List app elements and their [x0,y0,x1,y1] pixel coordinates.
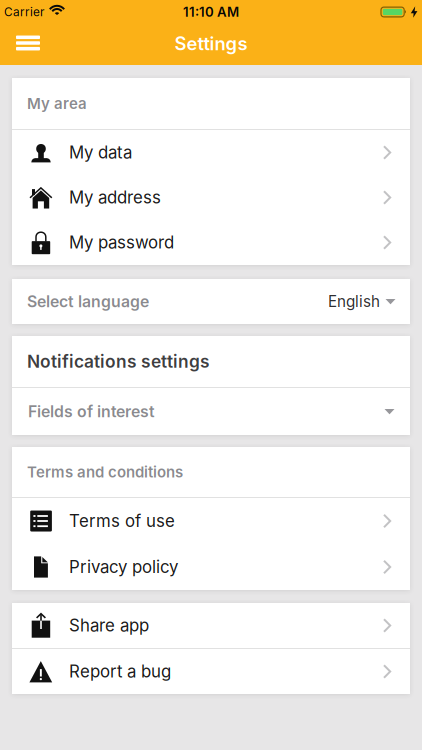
staticText: My area [27,94,87,112]
button[interactable]: My password [12,220,410,265]
staticText: Report a bug [69,661,171,682]
staticText: English [328,292,380,311]
button[interactable]: Report a bug [12,649,410,694]
staticText: My address [69,187,161,208]
staticText: My password [69,232,174,253]
button[interactable]: Terms of use [12,498,410,544]
button[interactable]: Privacy policy [12,544,410,590]
staticText: Share app [69,615,149,636]
staticText: Terms and conditions [27,463,183,481]
staticText: Settings [174,32,247,55]
button[interactable]: Fields of interest [12,388,410,435]
button[interactable]: My address [12,175,410,220]
staticText: Notifications settings [27,351,210,372]
staticText: Privacy policy [69,557,178,577]
staticText: My data [69,142,132,163]
staticText: Select language [27,292,149,311]
button[interactable]: Share app [12,603,410,648]
staticText: 11:10 AM [183,4,239,20]
staticText: Terms of use [69,511,175,531]
staticText: Fields of interest [28,402,155,421]
button[interactable]: Notifications settings [12,336,410,387]
button[interactable]: Select language [12,279,410,324]
button[interactable]: My data [12,130,410,175]
button[interactable]: Menu [0,35,40,53]
staticText: Carrier [4,5,44,19]
